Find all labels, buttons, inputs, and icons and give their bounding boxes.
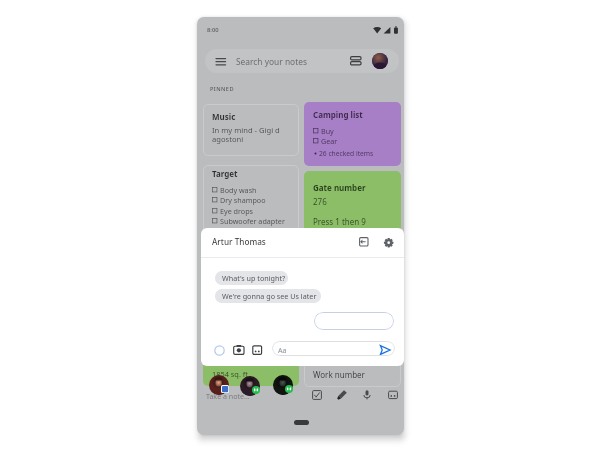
staticText: Press 1 then 9 <box>313 216 366 227</box>
staticText: Target <box>212 168 238 179</box>
staticText: Eye drops <box>220 206 254 216</box>
button[interactable]: New list <box>309 387 325 403</box>
button[interactable]: Aa <box>272 341 395 356</box>
button[interactable]: 1854 sq. ft <box>203 275 299 386</box>
button[interactable]: Switch layout <box>345 51 367 71</box>
button[interactable]: Work number <box>304 276 401 387</box>
staticText: Gear <box>321 136 338 146</box>
button[interactable]: Chat bubble <box>240 376 260 396</box>
staticText: Work number <box>313 369 365 380</box>
staticText: Aa <box>278 345 287 355</box>
button[interactable]: Send <box>380 345 390 355</box>
staticText: Dry shampoo <box>220 195 266 205</box>
button[interactable]: What's up tonight? <box>215 271 288 285</box>
button[interactable]: New drawing <box>334 387 350 403</box>
staticText: What's up tonight? <box>222 273 286 283</box>
button[interactable]: Camping list <box>304 102 401 166</box>
staticText: Camping list <box>313 109 363 120</box>
button[interactable]: Chat bubble <box>273 375 293 395</box>
button[interactable]: Gallery <box>252 344 264 356</box>
staticText: 1854 sq. ft <box>212 369 249 379</box>
button[interactable]: Open navigation menu <box>205 49 399 73</box>
staticText: Take a note... <box>206 391 250 401</box>
button[interactable]: New image note <box>385 387 401 403</box>
staticText: 8:00 <box>207 26 219 34</box>
button[interactable]: Chat bubble <box>209 375 229 395</box>
button[interactable]: Assistant <box>213 344 225 356</box>
staticText: Gate number <box>313 182 366 193</box>
staticText: Buy <box>321 126 334 136</box>
staticText: We're gonna go see Us later <box>222 291 317 301</box>
staticText: PINNED <box>210 85 234 93</box>
button[interactable]: Settings <box>381 235 395 249</box>
staticText: Artur Thomas <box>212 236 266 247</box>
button[interactable]: Open navigation menu <box>210 51 232 71</box>
button[interactable]: Account <box>372 53 388 69</box>
button[interactable]: Camera <box>233 344 245 356</box>
button[interactable]: Target <box>203 165 299 271</box>
staticText: Subwoofer adapter <box>220 216 285 226</box>
button[interactable]: New voice note <box>359 387 375 403</box>
staticText: 276 <box>313 196 327 207</box>
staticText: In my mind - Gigi d agostoni <box>212 125 280 144</box>
staticText: Music <box>212 111 236 122</box>
staticText: Search your notes <box>236 56 307 67</box>
button[interactable] <box>314 312 394 330</box>
button[interactable]: Take a note... <box>197 386 303 408</box>
staticText: 26 checked items <box>319 149 374 158</box>
button[interactable]: Gate number <box>304 171 401 271</box>
staticText: Body wash <box>220 185 257 195</box>
button[interactable]: Open in app <box>357 235 371 249</box>
button[interactable]: We're gonna go see Us later <box>215 289 321 303</box>
button[interactable]: Music <box>203 104 299 156</box>
